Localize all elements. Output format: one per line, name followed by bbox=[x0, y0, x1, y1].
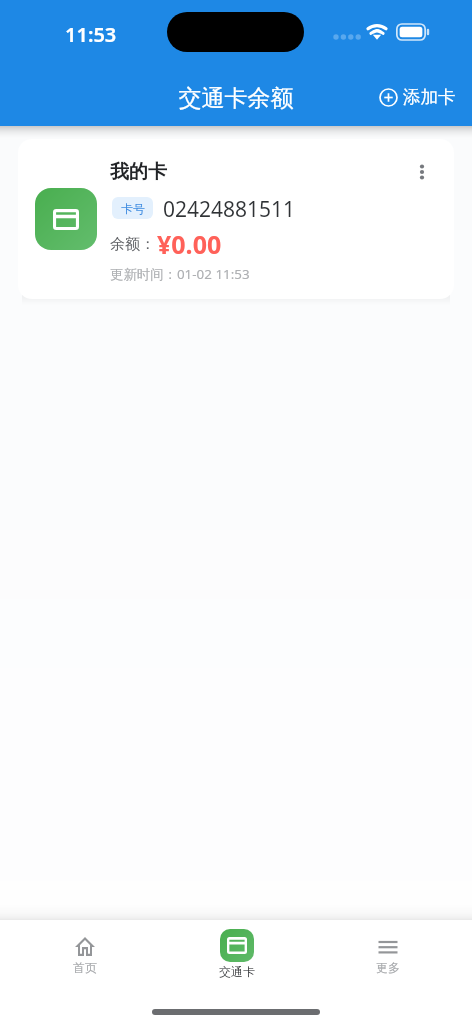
button[interactable]: 交通卡 bbox=[181, 929, 292, 979]
staticText: 首页 bbox=[73, 960, 97, 975]
staticText: 添加卡 bbox=[403, 86, 456, 108]
staticText: 交通卡余额 bbox=[0, 84, 472, 113]
staticText: 更多 bbox=[376, 960, 400, 975]
button[interactable]: 我的卡 bbox=[18, 139, 454, 299]
staticText: 02424881511 bbox=[163, 195, 296, 224]
staticText: 卡号 bbox=[121, 201, 145, 216]
staticText: ¥0.00 bbox=[157, 227, 222, 261]
staticText: 交通卡 bbox=[219, 964, 255, 979]
button[interactable]: 更多 bbox=[332, 937, 443, 975]
button[interactable]: More options bbox=[406, 156, 438, 188]
staticText: 更新时间：01-02 11:53 bbox=[110, 265, 250, 283]
button[interactable]: 添加卡 bbox=[376, 82, 459, 112]
staticText: 我的卡 bbox=[110, 160, 167, 184]
staticText: 余额： bbox=[110, 235, 155, 254]
staticText: 11:53 bbox=[65, 21, 117, 48]
button[interactable]: 首页 bbox=[29, 937, 140, 975]
